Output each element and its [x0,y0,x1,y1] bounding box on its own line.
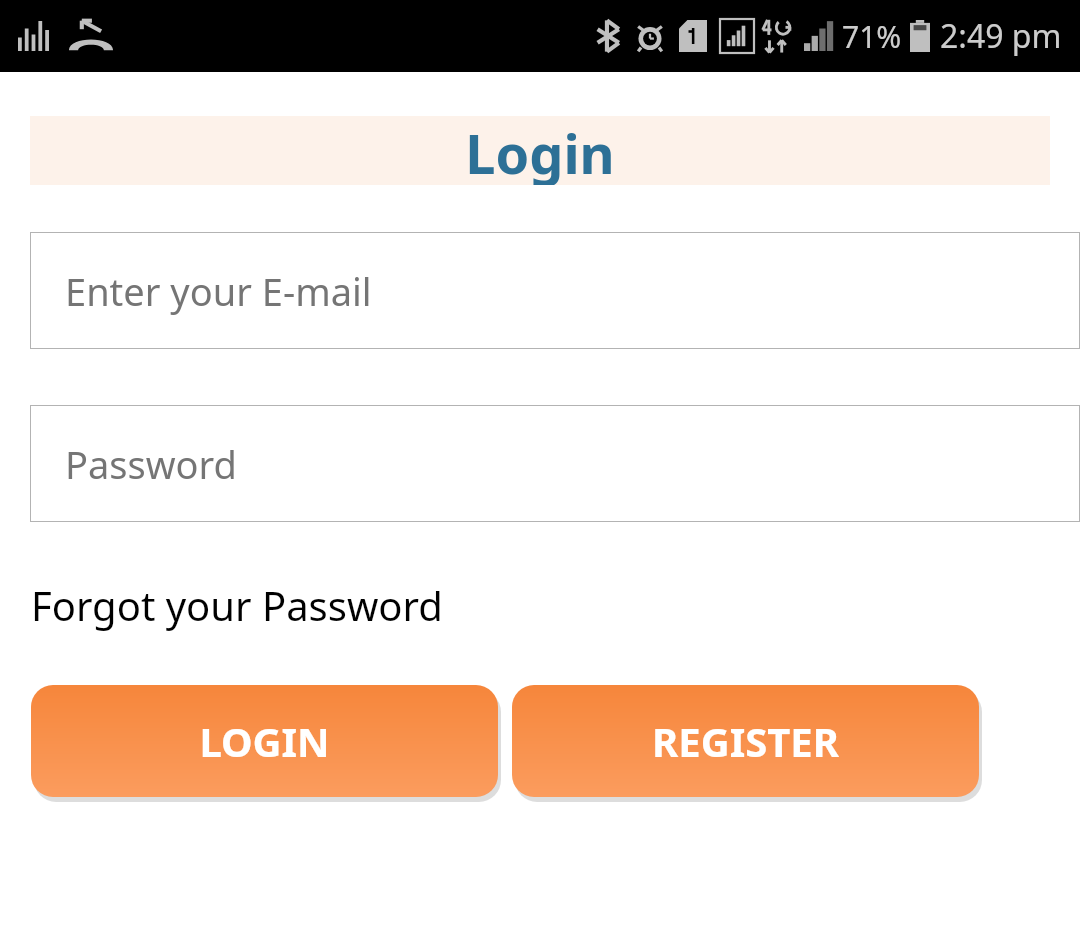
staticText: Login [465,116,615,185]
staticText: Enter your E-mail [65,265,372,317]
button[interactable]: LOGIN [31,685,498,797]
button[interactable]: Forgot your Password [31,578,443,632]
staticText: Forgot your Password [31,578,443,632]
button[interactable]: Enter your E-mail [30,232,1080,349]
staticText: LOGIN [199,714,330,768]
button[interactable]: REGISTER [512,685,979,797]
staticText: 2:49 pm [940,14,1062,58]
button[interactable]: Password [30,405,1080,522]
staticText: 71% [842,16,902,57]
staticText: Password [65,438,237,490]
staticText: REGISTER [652,714,839,768]
